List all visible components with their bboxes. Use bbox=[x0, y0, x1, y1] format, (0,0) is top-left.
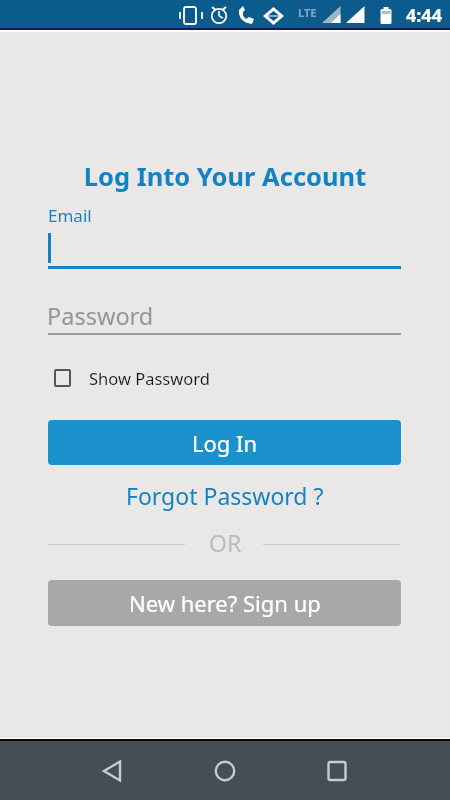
staticText: New here? Sign up bbox=[129, 588, 321, 618]
button[interactable] bbox=[175, 741, 275, 800]
staticText: OR bbox=[209, 527, 242, 558]
button[interactable] bbox=[54, 364, 214, 392]
button[interactable] bbox=[62, 741, 162, 800]
button[interactable]: New here? Sign up bbox=[48, 580, 401, 626]
staticText: Email bbox=[48, 204, 92, 227]
staticText: Log Into Your Account bbox=[0, 159, 450, 194]
staticText: Password bbox=[47, 300, 154, 332]
staticText: 4:44 bbox=[406, 3, 442, 28]
button[interactable]: Log In bbox=[48, 420, 401, 465]
button[interactable]: Forgot Password ? bbox=[126, 480, 324, 511]
staticText: Show Password bbox=[89, 367, 210, 389]
staticText: LTE bbox=[298, 5, 317, 20]
staticText: Log In bbox=[192, 428, 258, 458]
button[interactable] bbox=[287, 741, 387, 800]
